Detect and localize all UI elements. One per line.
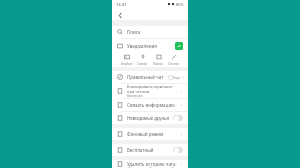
staticText: Альбом <box>121 62 133 66</box>
staticText: Ссылки <box>168 62 179 66</box>
staticText: Правильный чат <box>127 74 164 80</box>
button[interactable]: Файлы <box>152 53 165 67</box>
staticText: Связать информацию <box>127 102 175 108</box>
button[interactable]: Альбом <box>120 53 134 67</box>
button[interactable]: Бесплатный <box>173 147 183 153</box>
button[interactable]: Ссылки <box>167 53 180 67</box>
button[interactable]: Включено <box>175 42 183 50</box>
staticText: Удалить историю чата <box>127 161 176 167</box>
button[interactable]: Невидимые друзья <box>112 112 188 124</box>
staticText: Фоновый режим <box>127 131 164 137</box>
button[interactable]: Удалить историю чата <box>112 160 188 168</box>
staticText: Ещё <box>173 75 181 80</box>
button[interactable]: Невидимые друзья <box>173 115 183 121</box>
staticText: Стикер <box>137 62 148 66</box>
staticText: Бесплатный <box>127 147 154 153</box>
button[interactable]: Назад <box>116 11 124 19</box>
staticText: Невидимые друзья <box>127 115 169 121</box>
button[interactable]: Бесплатный <box>112 144 188 156</box>
staticText: Выключено <box>127 94 143 98</box>
staticText: Блокировать скриншот при чтении <box>127 84 180 94</box>
button[interactable]: Блокировать скриншот при чтении <box>112 84 188 98</box>
button[interactable]: Уведомления <box>112 39 188 52</box>
staticText: Файлы <box>153 62 164 66</box>
staticText: Поиск <box>127 29 141 35</box>
staticText: 13:41 <box>116 2 127 7</box>
staticText: 86% <box>176 2 184 7</box>
button[interactable]: Стикер <box>136 53 149 67</box>
button[interactable]: Связать информацию <box>112 99 188 111</box>
button[interactable]: Фоновый режим <box>112 128 188 140</box>
button[interactable]: Правильный чат <box>112 71 188 83</box>
button[interactable]: Поиск <box>112 26 188 38</box>
staticText: Уведомления <box>127 43 157 49</box>
